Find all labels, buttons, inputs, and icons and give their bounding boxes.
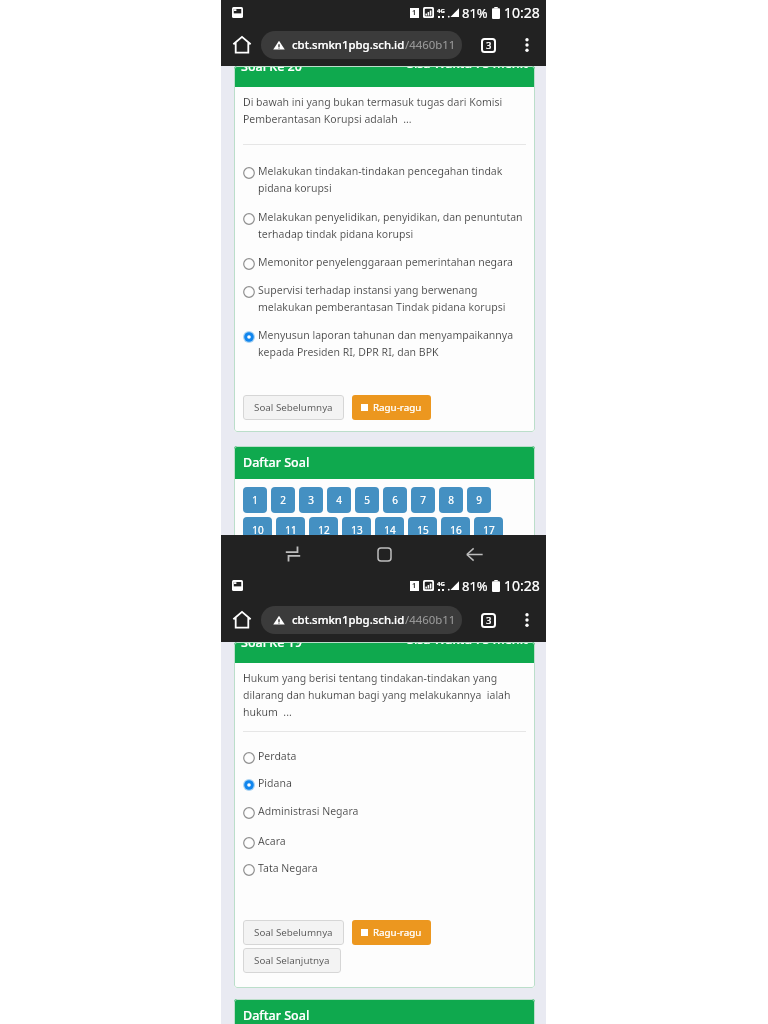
button[interactable]: Supervisi terhadap instansi yang berwena… [243, 283, 526, 315]
staticText: 3 [486, 39, 492, 52]
button[interactable]: Home [366, 536, 402, 572]
staticText: 5 [364, 493, 370, 507]
button[interactable]: 22 [375, 547, 404, 573]
button[interactable]: 25 [474, 547, 503, 573]
staticText: cbt.smkn1pbg.sch.id [292, 37, 405, 53]
button[interactable]: 3 [299, 487, 323, 513]
staticText: 15 [417, 523, 429, 537]
staticText: 3 [308, 493, 314, 507]
button[interactable]: Melakukan penyelidikan, penyidikan, dan … [243, 210, 526, 242]
staticText: 11 [285, 523, 297, 537]
staticText: Administrasi Negara [258, 804, 359, 818]
staticText: 2 [280, 493, 286, 507]
button[interactable]: cbt.smkn1pbg.sch.id [261, 31, 462, 59]
staticText: Hukum yang berisi tentang tindakan-tinda… [243, 671, 511, 720]
staticText: 13 [351, 523, 363, 537]
button[interactable]: 16 [441, 517, 470, 543]
staticText: Menyusun laporan tahunan dan menyampaika… [258, 328, 514, 360]
staticText: Soal Sebelumnya [254, 401, 333, 414]
staticText: 10:28 [504, 576, 540, 595]
button[interactable]: 15 [408, 517, 437, 543]
button[interactable]: Acara [243, 834, 526, 851]
staticText: Pidana [258, 776, 292, 790]
button[interactable]: 6 [383, 487, 407, 513]
button[interactable]: 2 [271, 487, 295, 513]
button[interactable]: Back [456, 536, 492, 572]
button[interactable]: 14 [375, 517, 404, 543]
button[interactable]: Open tabs [475, 607, 501, 633]
button[interactable]: Administrasi Negara [243, 804, 526, 821]
button[interactable]: Pidana [243, 776, 526, 793]
button[interactable]: cbt.smkn1pbg.sch.id [261, 606, 462, 634]
button[interactable]: More options [515, 33, 539, 57]
staticText: Di bawah ini yang bukan termasuk tugas d… [243, 95, 503, 127]
button[interactable]: 12 [309, 517, 338, 543]
staticText: 81% [462, 4, 488, 22]
button[interactable]: Memonitor penyelenggaraan pemerintahan n… [243, 255, 526, 272]
staticText: Tata Negara [258, 861, 318, 875]
button[interactable]: Ragu-ragu [352, 395, 431, 420]
staticText: 17 [483, 523, 495, 537]
staticText: /4460b11 [405, 37, 456, 53]
staticText: 1 [412, 581, 417, 591]
button[interactable]: Perdata [243, 749, 526, 766]
button[interactable]: 10 [243, 517, 272, 543]
staticText: 1 [252, 493, 258, 507]
staticText: Sisa Waktu 75 menit [407, 642, 528, 648]
staticText: 81% [462, 577, 488, 595]
button[interactable]: 4 [327, 487, 351, 513]
button[interactable]: Home [227, 30, 257, 60]
staticText: Perdata [258, 749, 297, 763]
button[interactable]: More options [515, 608, 539, 632]
staticText: 1 [412, 8, 417, 18]
button[interactable]: Ragu-ragu [352, 920, 431, 945]
staticText: Soal Selanjutnya [254, 954, 330, 967]
staticText: Memonitor penyelenggaraan pemerintahan n… [258, 255, 513, 269]
staticText: 3 [486, 614, 492, 627]
button[interactable]: 5 [355, 487, 379, 513]
staticText: 4G [437, 7, 445, 15]
button[interactable]: 11 [276, 517, 305, 543]
button[interactable]: 9 [467, 487, 491, 513]
button[interactable]: Home [227, 605, 257, 635]
staticText: 6 [392, 493, 398, 507]
button[interactable]: 17 [474, 517, 503, 543]
staticText: Soal Ke 20 [241, 66, 302, 75]
staticText: Soal Ke 19 [241, 642, 302, 651]
button[interactable]: 24 [441, 547, 470, 573]
staticText: 10:28 [504, 3, 540, 22]
staticText: 4G [437, 580, 445, 588]
button[interactable]: Tata Negara [243, 861, 526, 878]
button[interactable]: 19 [276, 547, 305, 573]
button[interactable]: 8 [439, 487, 463, 513]
staticText: Melakukan tindakan-tindakan pencegahan t… [258, 164, 503, 196]
button[interactable]: Soal Selanjutnya [243, 948, 341, 973]
button[interactable]: Soal Sebelumnya [243, 920, 344, 945]
staticText: 22 [384, 553, 396, 567]
button[interactable]: 1 [243, 487, 267, 513]
staticText: Soal Sebelumnya [254, 926, 333, 939]
staticText: Melakukan penyelidikan, penyidikan, dan … [258, 210, 523, 242]
button[interactable]: Menyusun laporan tahunan dan menyampaika… [243, 328, 526, 360]
button[interactable]: Recent apps [275, 536, 311, 572]
button[interactable]: Melakukan tindakan-tindakan pencegahan t… [243, 164, 526, 196]
staticText: Ragu-ragu [373, 401, 422, 414]
button[interactable]: 13 [342, 517, 371, 543]
button[interactable]: 7 [411, 487, 435, 513]
staticText: 9 [476, 493, 482, 507]
button[interactable]: Soal Sebelumnya [243, 395, 344, 420]
staticText: Daftar Soal [243, 454, 310, 471]
staticText: 7 [420, 493, 426, 507]
staticText: Sisa Waktu 75 menit [407, 66, 528, 72]
button[interactable]: Open tabs [475, 32, 501, 58]
staticText: Daftar Soal [243, 1007, 310, 1024]
